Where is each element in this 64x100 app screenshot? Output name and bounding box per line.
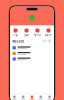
staticText: More [45, 33, 52, 37]
staticText: Pay [13, 33, 17, 37]
button[interactable]: Tab [36, 95, 45, 100]
button[interactable] [10, 45, 54, 51]
button[interactable]: More [43, 28, 54, 37]
button[interactable]: Tab [28, 95, 36, 100]
staticText: Send [34, 33, 41, 37]
staticText: Scan [24, 33, 29, 37]
button[interactable] [10, 56, 54, 62]
button[interactable]: Tab [10, 95, 19, 100]
button[interactable]: Scan [21, 28, 32, 37]
button[interactable]: Send [32, 28, 43, 37]
button[interactable]: Pay [10, 28, 21, 37]
button[interactable] [10, 51, 54, 56]
staticText: See all [42, 39, 51, 43]
button[interactable]: Tab [45, 95, 54, 100]
button[interactable]: Tab [19, 95, 28, 100]
staticText: Recent [12, 39, 23, 43]
